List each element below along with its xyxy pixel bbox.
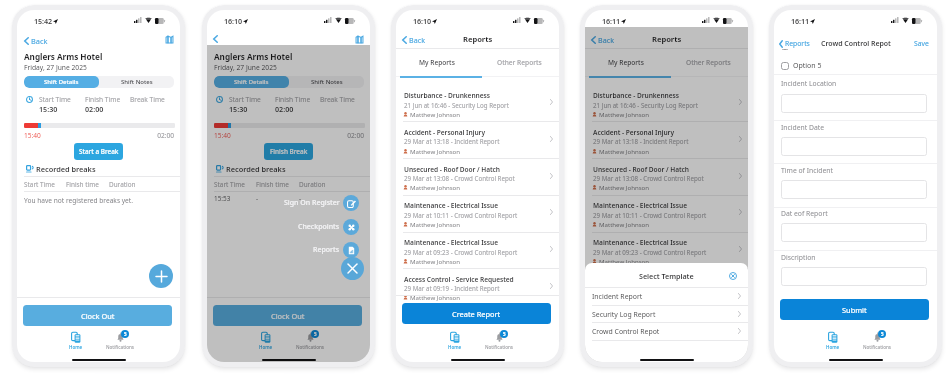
staticText: Matthew Johnson xyxy=(599,220,650,228)
button[interactable]: Other Reports xyxy=(667,58,748,69)
staticText: Matthew Johnson xyxy=(410,293,461,301)
button[interactable] xyxy=(396,158,559,195)
button[interactable]: Home xyxy=(629,332,659,350)
staticText: Notifications xyxy=(485,344,514,350)
staticText: Submit xyxy=(842,305,867,315)
button[interactable]: Back xyxy=(212,33,219,45)
button[interactable] xyxy=(585,268,748,305)
button[interactable]: Back xyxy=(401,33,426,47)
button[interactable]: Shift Details xyxy=(214,76,289,88)
button[interactable] xyxy=(585,231,748,268)
staticText: Home xyxy=(448,344,462,350)
button[interactable] xyxy=(781,94,927,113)
button[interactable] xyxy=(781,180,927,199)
button[interactable]: Clock Out xyxy=(213,305,362,326)
staticText: Matthew Johnson xyxy=(410,257,461,265)
button[interactable]: Home xyxy=(440,332,470,350)
staticText: Shift Details xyxy=(44,78,79,86)
button[interactable]: Crowd Control Repot xyxy=(585,322,748,340)
button[interactable]: Finish Break xyxy=(264,143,313,160)
staticText: Matthew Johnson xyxy=(599,147,650,155)
staticText: Clock Out xyxy=(271,311,305,321)
staticText: Notifications xyxy=(863,344,892,350)
button[interactable]: 5 xyxy=(484,332,514,350)
button[interactable]: Reports xyxy=(207,242,359,258)
staticText: Option 5 xyxy=(793,61,822,71)
button[interactable]: Home xyxy=(251,332,281,350)
button[interactable]: Security Log Report xyxy=(585,305,748,323)
button[interactable] xyxy=(396,268,559,303)
staticText: 29 Mar at 13:18 - Incident Report xyxy=(593,137,689,145)
button[interactable] xyxy=(396,195,559,232)
button[interactable]: Back xyxy=(23,34,49,48)
button[interactable]: 5 xyxy=(673,332,703,350)
button[interactable] xyxy=(585,158,748,195)
button[interactable]: 5 xyxy=(105,332,135,350)
staticText: You have not registered breaks yet. xyxy=(24,196,133,205)
button[interactable]: Submit xyxy=(780,299,929,320)
button[interactable]: Other Reports xyxy=(478,58,559,69)
button[interactable]: Clock Out xyxy=(23,305,172,326)
staticText: My Reports xyxy=(608,58,644,67)
button[interactable] xyxy=(781,223,927,242)
staticText: Unsecured - Roof Door / Hatch xyxy=(404,165,501,174)
staticText: Duration xyxy=(299,180,326,189)
button[interactable]: Shift Notes xyxy=(99,76,174,88)
staticText: 02:00 xyxy=(344,131,364,140)
button[interactable]: Option 5 xyxy=(781,61,822,71)
staticText: 29 Mar at 09:19 - Incident Report xyxy=(404,284,500,292)
button[interactable] xyxy=(396,84,559,121)
staticText: 16:11 xyxy=(791,16,809,26)
staticText: Matthew Johnson xyxy=(410,147,461,155)
button[interactable]: Map xyxy=(163,34,176,46)
button[interactable]: 5 xyxy=(295,332,325,350)
staticText: Maintenance - Electrical Issue xyxy=(593,201,687,210)
button[interactable] xyxy=(585,121,748,158)
button[interactable]: Home xyxy=(818,332,848,350)
staticText: Notifications xyxy=(296,344,325,350)
button[interactable]: Home xyxy=(61,332,91,350)
button[interactable] xyxy=(585,84,748,121)
staticText: Finish time xyxy=(66,180,99,189)
button[interactable]: Sign On Register xyxy=(207,195,359,211)
staticText: 29 Mar at 09:23 - Crowd Control Report xyxy=(404,248,518,256)
button[interactable]: My Reports xyxy=(396,58,478,69)
staticText: Crowd Control Repot xyxy=(592,327,660,336)
staticText: Maintenance - Electrical Issue xyxy=(404,238,498,247)
button[interactable]: My Reports xyxy=(585,58,667,69)
button[interactable] xyxy=(396,231,559,268)
staticText: Incident Location xyxy=(781,79,837,88)
button[interactable]: Reports xyxy=(778,37,811,50)
staticText: Accident - Personal Injury xyxy=(593,128,674,137)
button[interactable]: Map xyxy=(353,34,366,46)
button[interactable]: Checkpoints xyxy=(207,219,359,235)
button[interactable] xyxy=(781,267,927,286)
button[interactable]: Save xyxy=(913,39,930,48)
staticText: Reports xyxy=(463,34,493,44)
button[interactable]: Close xyxy=(728,271,738,281)
staticText: Break Time xyxy=(130,95,165,104)
button[interactable]: Create Report xyxy=(402,303,551,324)
staticText: 29 Mar at 13:08 - Crowd Control Repot xyxy=(404,174,515,182)
staticText: Shift Notes xyxy=(121,78,153,86)
button[interactable]: Add xyxy=(149,264,173,288)
button[interactable]: Shift Details xyxy=(24,76,99,88)
button[interactable] xyxy=(781,137,927,156)
button[interactable] xyxy=(585,195,748,232)
button[interactable]: Start a Break xyxy=(74,143,123,160)
button[interactable]: Create Report xyxy=(591,303,740,324)
staticText: Security Log Report xyxy=(592,310,656,319)
button[interactable] xyxy=(396,121,559,158)
button[interactable]: Close menu xyxy=(341,257,364,280)
staticText: Unsecured - Roof Door / Hatch xyxy=(593,165,690,174)
staticText: Back xyxy=(31,36,48,46)
button[interactable]: 5 xyxy=(862,332,892,350)
button[interactable]: Incident Report xyxy=(585,287,748,305)
button[interactable]: Back xyxy=(590,33,615,47)
staticText: My Reports xyxy=(419,58,455,67)
staticText: Matthew Johnson xyxy=(599,183,650,191)
staticText: 15:30 xyxy=(229,104,248,114)
button[interactable]: Shift Notes xyxy=(289,76,364,88)
